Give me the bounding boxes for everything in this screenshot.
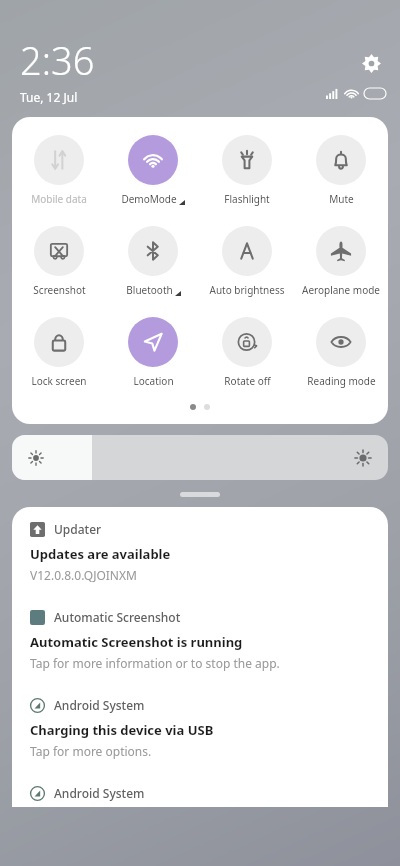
staticText: Mute xyxy=(329,192,354,206)
staticText: Android System xyxy=(54,697,145,713)
button[interactable]: Automatic Screenshot xyxy=(12,595,388,683)
staticText: Screenshot xyxy=(33,283,86,297)
staticText: Lock screen xyxy=(31,374,87,388)
button[interactable] xyxy=(12,435,388,480)
staticText: Updates are available xyxy=(30,545,171,563)
button[interactable]: Lock screen xyxy=(12,315,106,390)
staticText: Flashlight xyxy=(224,192,270,206)
button[interactable]: Updater xyxy=(12,507,388,595)
staticText: Aeroplane mode xyxy=(302,283,380,297)
staticText: Tap for more information or to stop the … xyxy=(30,655,280,671)
staticText: Rotate off xyxy=(224,374,271,388)
button[interactable]: Screenshot xyxy=(12,224,106,299)
button[interactable]: Android System xyxy=(12,683,388,771)
staticText: Mobile data xyxy=(31,192,87,206)
staticText: Location xyxy=(133,374,174,388)
button[interactable]: Flashlight xyxy=(200,133,294,208)
staticText: Automatic Screenshot xyxy=(54,609,181,625)
staticText: Updater xyxy=(54,521,102,537)
staticText: Bluetooth xyxy=(126,283,173,297)
staticText: V12.0.8.0.QJOINXM xyxy=(30,567,137,583)
button[interactable]: Reading mode xyxy=(294,315,388,390)
button[interactable]: Location xyxy=(106,315,200,390)
staticText: Charging this device via USB xyxy=(30,721,214,739)
staticText: 2:36 xyxy=(20,34,95,86)
staticText: DemoMode xyxy=(121,192,177,206)
staticText: Tap for more options. xyxy=(30,743,152,759)
button[interactable]: Android System xyxy=(12,771,388,807)
staticText: Tue, 12 Jul xyxy=(20,89,78,105)
button[interactable]: Bluetooth xyxy=(106,224,200,299)
button[interactable]: Mobile data xyxy=(12,133,106,208)
staticText: Android System xyxy=(54,785,145,801)
staticText: Auto brightness xyxy=(209,283,285,297)
button[interactable]: Mute xyxy=(294,133,388,208)
staticText: Automatic Screenshot is running xyxy=(30,633,243,651)
button[interactable]: Auto brightness xyxy=(200,224,294,299)
button[interactable]: Aeroplane mode xyxy=(294,224,388,299)
button[interactable]: DemoMode xyxy=(106,133,200,208)
button[interactable]: Rotate off xyxy=(200,315,294,390)
button[interactable]: Settings xyxy=(358,50,384,76)
staticText: Reading mode xyxy=(307,374,376,388)
